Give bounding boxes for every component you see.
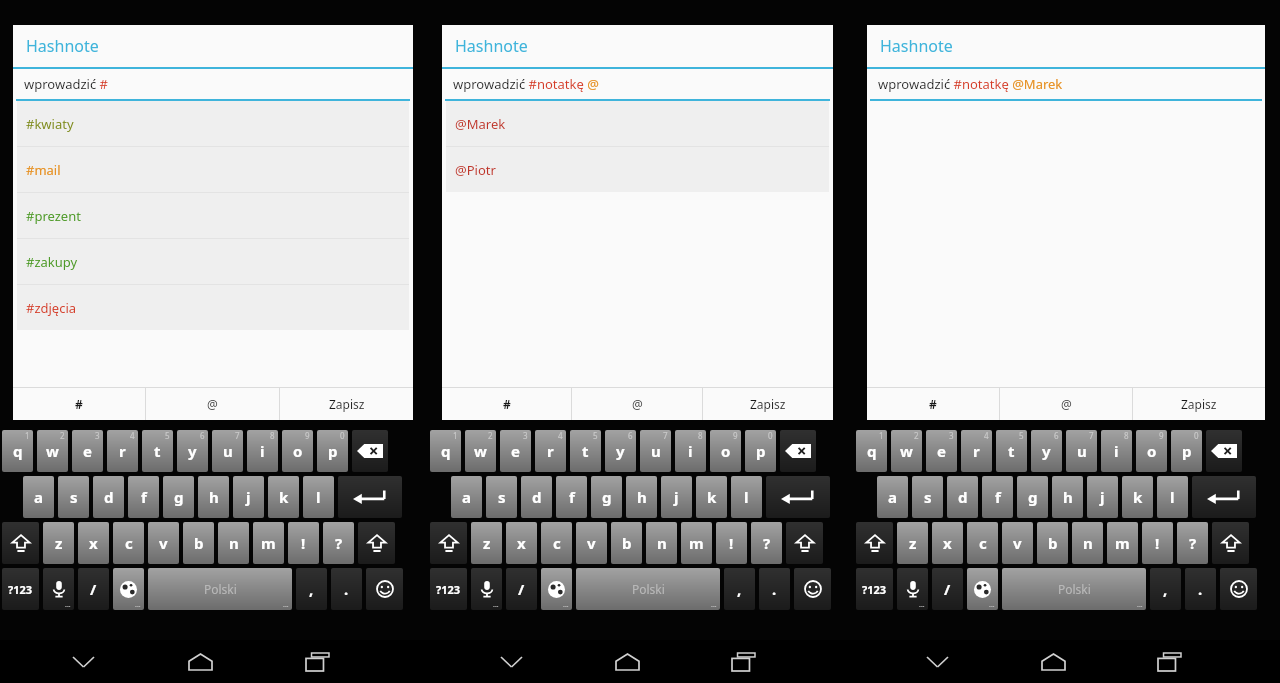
button[interactable]: a xyxy=(451,476,482,518)
button[interactable]: a xyxy=(23,476,54,518)
button[interactable]: , xyxy=(296,568,327,610)
button[interactable]: i xyxy=(247,430,278,472)
button[interactable]: v xyxy=(1002,522,1033,564)
button[interactable]: z xyxy=(471,522,502,564)
button[interactable]: a xyxy=(877,476,908,518)
button[interactable]: w xyxy=(37,430,68,472)
button[interactable]: Backspace xyxy=(780,430,816,472)
button[interactable]: m xyxy=(681,522,712,564)
button[interactable]: x xyxy=(506,522,537,564)
button[interactable]: Recent apps xyxy=(294,640,340,683)
button[interactable]: h xyxy=(198,476,229,518)
button[interactable]: u xyxy=(640,430,671,472)
button[interactable]: #prezent xyxy=(17,193,409,238)
button[interactable]: q xyxy=(430,430,461,472)
button[interactable]: q xyxy=(856,430,887,472)
button[interactable]: #kwiaty xyxy=(17,101,409,146)
button[interactable]: n xyxy=(218,522,249,564)
button[interactable]: i xyxy=(1101,430,1132,472)
button[interactable]: l xyxy=(1157,476,1188,518)
button[interactable]: ?123 xyxy=(430,568,467,610)
button[interactable]: Voice input xyxy=(897,568,928,610)
button[interactable]: e xyxy=(72,430,103,472)
button[interactable]: t xyxy=(996,430,1027,472)
button[interactable]: v xyxy=(148,522,179,564)
button[interactable]: q xyxy=(2,430,33,472)
button[interactable]: # xyxy=(13,388,145,420)
button[interactable]: s xyxy=(912,476,943,518)
button[interactable]: Polski xyxy=(576,568,720,610)
button[interactable]: Polski xyxy=(148,568,292,610)
button[interactable]: s xyxy=(486,476,517,518)
button[interactable]: v xyxy=(576,522,607,564)
button[interactable]: / xyxy=(932,568,963,610)
button[interactable]: Recent apps xyxy=(1146,640,1192,683)
button[interactable]: z xyxy=(897,522,928,564)
button[interactable]: p xyxy=(317,430,348,472)
button[interactable]: r xyxy=(535,430,566,472)
button[interactable]: Shift xyxy=(786,522,823,564)
button[interactable]: . xyxy=(759,568,790,610)
button[interactable]: r xyxy=(107,430,138,472)
button[interactable]: Voice input xyxy=(471,568,502,610)
button[interactable]: n xyxy=(1072,522,1103,564)
button[interactable]: Shift xyxy=(358,522,395,564)
button[interactable]: g xyxy=(1017,476,1048,518)
button[interactable]: o xyxy=(1136,430,1167,472)
button[interactable]: d xyxy=(521,476,552,518)
button[interactable]: p xyxy=(745,430,776,472)
button[interactable]: Zapisz xyxy=(1133,388,1265,420)
button[interactable]: m xyxy=(253,522,284,564)
button[interactable]: # xyxy=(867,388,999,420)
button[interactable]: / xyxy=(506,568,537,610)
button[interactable]: f xyxy=(982,476,1013,518)
button[interactable]: Hide keyboard xyxy=(914,640,960,683)
button[interactable]: x xyxy=(932,522,963,564)
button[interactable]: x xyxy=(78,522,109,564)
button[interactable]: b xyxy=(1037,522,1068,564)
button[interactable]: g xyxy=(591,476,622,518)
button[interactable]: ?123 xyxy=(2,568,39,610)
button[interactable]: ? xyxy=(323,522,354,564)
button[interactable]: o xyxy=(710,430,741,472)
button[interactable]: Hide keyboard xyxy=(60,640,106,683)
button[interactable]: @ xyxy=(572,388,702,420)
button[interactable]: h xyxy=(626,476,657,518)
button[interactable]: l xyxy=(731,476,762,518)
button[interactable]: ! xyxy=(716,522,747,564)
button[interactable]: k xyxy=(1122,476,1153,518)
button[interactable]: j xyxy=(661,476,692,518)
button[interactable]: / xyxy=(78,568,109,610)
button[interactable]: i xyxy=(675,430,706,472)
button[interactable]: # xyxy=(442,388,571,420)
button[interactable]: u xyxy=(212,430,243,472)
button[interactable]: @ xyxy=(1000,388,1132,420)
button[interactable]: ?123 xyxy=(856,568,893,610)
button[interactable]: b xyxy=(611,522,642,564)
button[interactable]: g xyxy=(163,476,194,518)
button[interactable]: #zdjęcia xyxy=(17,285,409,330)
button[interactable]: o xyxy=(282,430,313,472)
button[interactable]: Home xyxy=(604,640,650,683)
button[interactable]: , xyxy=(724,568,755,610)
button[interactable]: #mail xyxy=(17,147,409,192)
button[interactable]: e xyxy=(500,430,531,472)
button[interactable]: e xyxy=(926,430,957,472)
button[interactable]: @Piotr xyxy=(446,147,829,192)
button[interactable]: k xyxy=(268,476,299,518)
button[interactable]: Zapisz xyxy=(703,388,833,420)
button[interactable]: @Marek xyxy=(446,101,829,146)
button[interactable]: d xyxy=(947,476,978,518)
button[interactable]: Change language xyxy=(541,568,572,610)
button[interactable]: u xyxy=(1066,430,1097,472)
button[interactable]: c xyxy=(967,522,998,564)
button[interactable]: Backspace xyxy=(1206,430,1242,472)
button[interactable]: . xyxy=(1185,568,1216,610)
button[interactable]: j xyxy=(1087,476,1118,518)
button[interactable]: y xyxy=(177,430,208,472)
button[interactable]: Emoji xyxy=(794,568,831,610)
button[interactable]: b xyxy=(183,522,214,564)
button[interactable]: Emoji xyxy=(1220,568,1257,610)
button[interactable]: f xyxy=(128,476,159,518)
button[interactable]: Shift xyxy=(856,522,893,564)
